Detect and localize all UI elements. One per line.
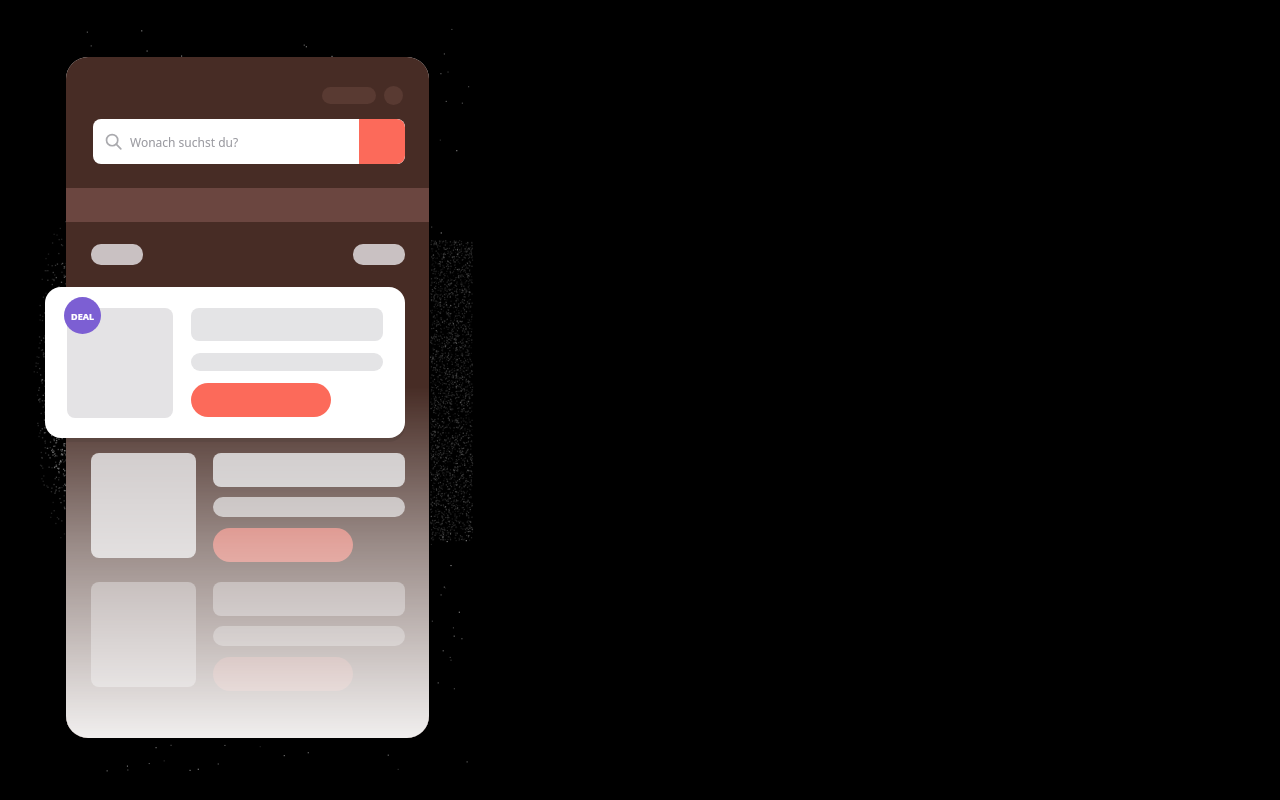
button[interactable] [213, 657, 353, 691]
button[interactable] [213, 528, 353, 562]
button[interactable]: Account [322, 87, 376, 104]
button[interactable] [45, 287, 405, 438]
button[interactable]: Cart [384, 86, 403, 105]
button[interactable]: Wonach suchst du? [93, 119, 405, 164]
button[interactable]: Deal badge [64, 297, 101, 334]
button[interactable]: Sort [353, 244, 405, 265]
button[interactable]: Search [359, 119, 405, 164]
staticText: Wonach suchst du? [130, 134, 239, 150]
staticText: DEAL [71, 310, 94, 322]
button[interactable] [91, 582, 388, 691]
button[interactable] [191, 383, 331, 417]
button[interactable]: Filter [91, 244, 143, 265]
button[interactable] [91, 453, 388, 562]
